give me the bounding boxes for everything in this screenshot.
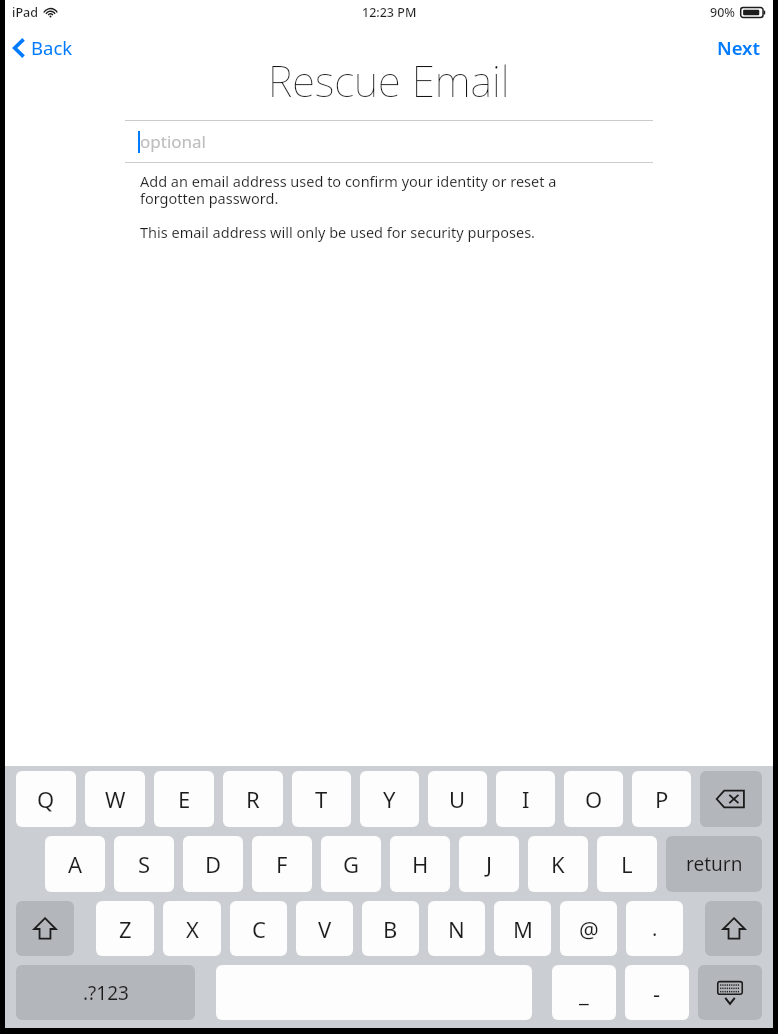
button[interactable]: O [564, 771, 623, 827]
staticText: 12:23 PM [362, 4, 417, 21]
staticText: B [383, 914, 398, 944]
staticText: U [449, 784, 466, 814]
button[interactable]: Backspace [700, 771, 762, 827]
button[interactable]: K [528, 836, 588, 892]
staticText: P [655, 784, 669, 814]
staticText: H [412, 849, 429, 879]
button[interactable]: H [390, 836, 450, 892]
staticText: S [138, 849, 151, 879]
staticText: G [343, 849, 360, 879]
button[interactable]: E [154, 771, 214, 827]
staticText: Z [119, 914, 132, 944]
staticText: N [448, 914, 465, 944]
staticText: _ [579, 978, 589, 1008]
button[interactable]: M [494, 901, 551, 956]
staticText: V [318, 914, 332, 944]
button[interactable]: return [666, 836, 762, 892]
staticText: W [105, 784, 126, 814]
staticText: optional [140, 130, 206, 153]
staticText: A [68, 849, 83, 879]
staticText: E [178, 784, 191, 814]
button[interactable]: optional [125, 121, 653, 162]
button[interactable]: S [114, 836, 174, 892]
button[interactable]: U [428, 771, 487, 827]
staticText: . [652, 915, 658, 942]
staticText: 90% [710, 4, 735, 21]
staticText: R [246, 784, 260, 814]
staticText: C [252, 914, 266, 944]
staticText: K [551, 849, 565, 879]
button[interactable]: F [252, 836, 312, 892]
staticText: X [186, 914, 199, 944]
button[interactable]: Back [5, 29, 85, 66]
staticText: D [205, 849, 222, 879]
staticText: O [585, 784, 603, 814]
staticText: .?123 [83, 980, 129, 1006]
button[interactable]: I [496, 771, 555, 827]
button[interactable]: N [428, 901, 485, 956]
button[interactable]: @ [560, 901, 617, 956]
button[interactable]: G [321, 836, 381, 892]
button[interactable]: C [230, 901, 287, 956]
button[interactable]: - [625, 965, 689, 1020]
button[interactable]: R [223, 771, 283, 827]
button[interactable]: P [632, 771, 691, 827]
staticText: This email address will only be used for… [140, 222, 535, 242]
staticText: - [653, 978, 661, 1008]
staticText: @ [579, 914, 599, 944]
staticText: F [276, 849, 288, 879]
button[interactable]: T [292, 771, 351, 827]
button[interactable]: .?123 [16, 965, 195, 1020]
button[interactable]: L [597, 836, 657, 892]
button[interactable]: Next [701, 27, 773, 68]
button[interactable]: Y [360, 771, 419, 827]
button[interactable]: X [163, 901, 221, 956]
button[interactable]: Q [16, 771, 76, 827]
staticText: T [315, 784, 328, 814]
staticText: Back [31, 35, 73, 60]
button[interactable]: W [85, 771, 145, 827]
button[interactable]: V [296, 901, 353, 956]
staticText: Add an email address used to confirm you… [140, 171, 591, 208]
staticText: Q [37, 784, 55, 814]
staticText: Y [383, 784, 396, 814]
button[interactable]: J [459, 836, 519, 892]
button[interactable]: Shift [16, 901, 74, 956]
button[interactable]: . [626, 901, 683, 956]
button[interactable]: Shift [705, 901, 762, 956]
button[interactable]: A [45, 836, 105, 892]
button[interactable]: Hide keyboard [698, 965, 762, 1020]
staticText: I [522, 784, 530, 814]
staticText: J [486, 849, 493, 879]
button[interactable]: D [183, 836, 243, 892]
button[interactable]: Z [96, 901, 154, 956]
staticText: Rescue Email [268, 52, 510, 109]
staticText: Next [717, 35, 760, 60]
button[interactable]: _ [552, 965, 616, 1020]
staticText: L [621, 849, 633, 879]
staticText: iPad [12, 4, 38, 21]
button[interactable]: B [362, 901, 419, 956]
staticText: M [513, 914, 533, 944]
staticText: return [686, 851, 743, 877]
